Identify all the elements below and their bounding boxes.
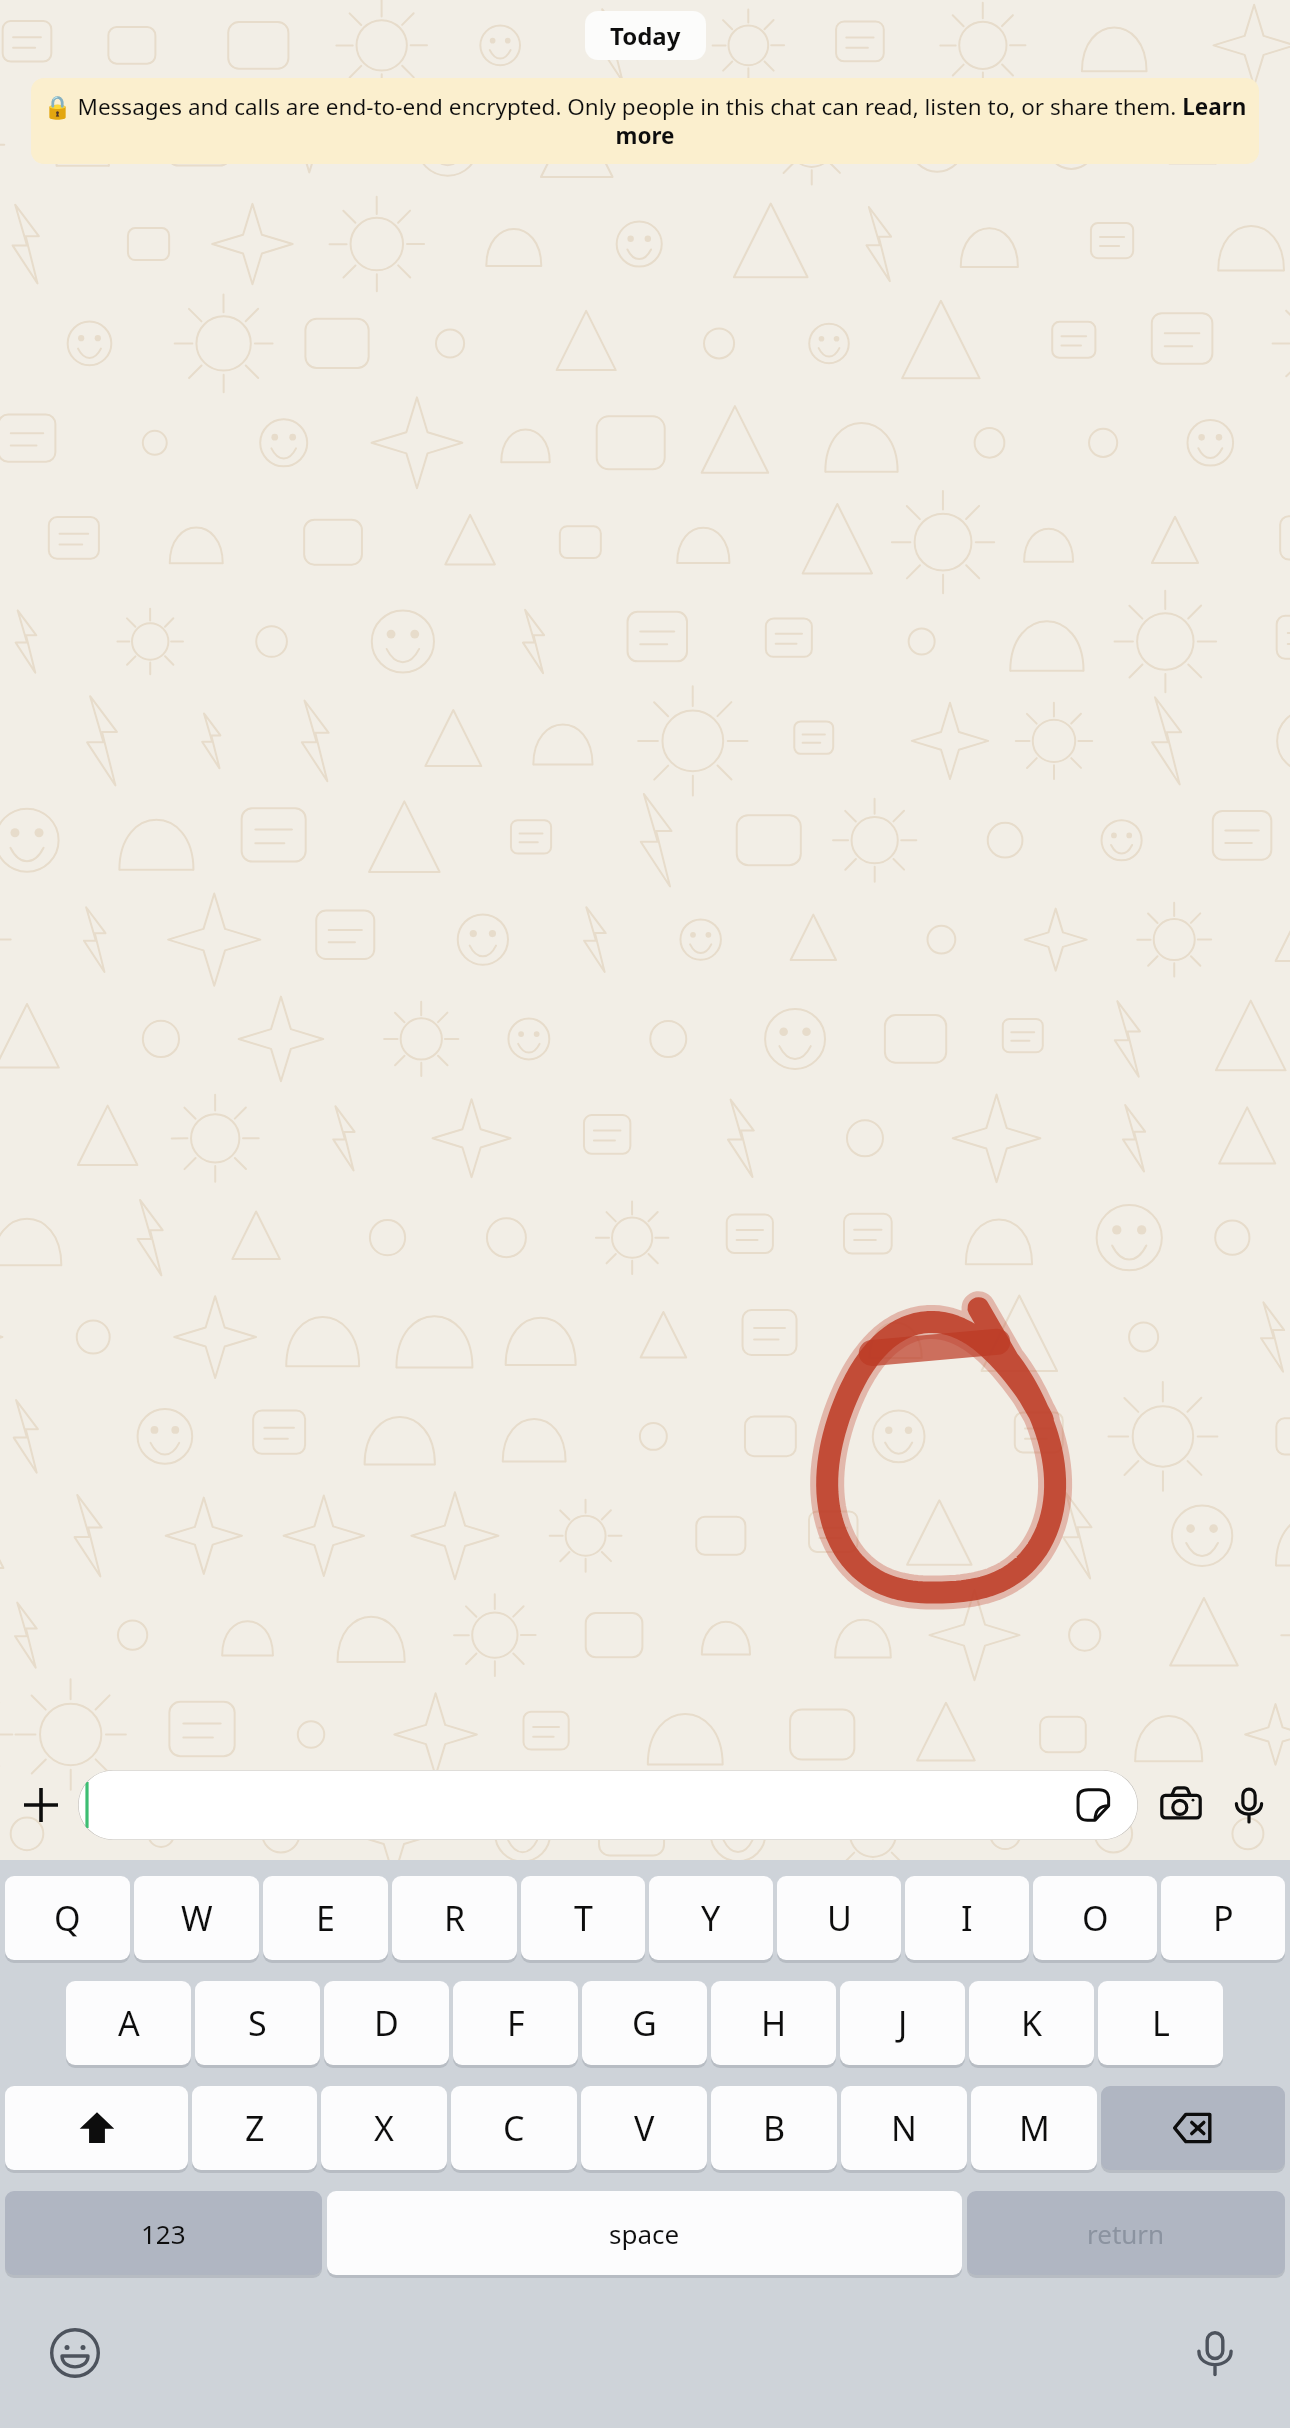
button[interactable]: Y: [649, 1876, 773, 1960]
button[interactable]: O: [1033, 1876, 1157, 1960]
button[interactable]: U: [777, 1876, 901, 1960]
button[interactable]: Stickers: [78, 1770, 1138, 1840]
staticText: F: [507, 2000, 525, 2046]
button[interactable]: S: [195, 1981, 320, 2065]
button[interactable]: X: [321, 2086, 447, 2170]
staticText: W: [181, 1895, 213, 1941]
staticText: M: [1019, 2105, 1050, 2151]
button[interactable]: Voice message: [1218, 1774, 1280, 1836]
button[interactable]: Z: [192, 2086, 317, 2170]
button[interactable]: Emoji: [40, 2318, 110, 2388]
staticText: G: [632, 2000, 657, 2046]
other: Backspace: [1101, 2086, 1285, 2173]
button[interactable]: I: [905, 1876, 1029, 1960]
staticText: Y: [701, 1895, 721, 1941]
button[interactable]: B: [711, 2086, 837, 2170]
button[interactable]: 123: [5, 2191, 322, 2275]
staticText: T: [574, 1895, 593, 1941]
staticText: U: [827, 1895, 852, 1941]
button[interactable]: Attach: [10, 1774, 72, 1836]
staticText: space: [609, 2216, 680, 2251]
staticText: return: [1087, 2216, 1165, 2251]
staticText: P: [1213, 1895, 1234, 1941]
staticText: X: [374, 2105, 394, 2151]
button[interactable]: 🔒 Messages and calls are end-to-end encr…: [31, 78, 1259, 164]
button[interactable]: D: [324, 1981, 449, 2065]
button[interactable]: W: [134, 1876, 259, 1960]
button[interactable]: space: [327, 2191, 962, 2275]
button[interactable]: M: [971, 2086, 1097, 2170]
button[interactable]: K: [969, 1981, 1094, 2065]
button[interactable]: J: [840, 1981, 965, 2065]
button[interactable]: return: [967, 2191, 1285, 2275]
staticText: D: [374, 2000, 399, 2046]
staticText: O: [1082, 1895, 1109, 1941]
staticText: B: [763, 2105, 786, 2151]
button[interactable]: Camera: [1150, 1774, 1212, 1836]
staticText: Z: [245, 2105, 265, 2151]
staticText: A: [118, 2000, 140, 2046]
staticText: S: [248, 2000, 267, 2046]
staticText: V: [634, 2105, 655, 2151]
button[interactable]: Stickers: [1066, 1778, 1120, 1832]
button[interactable]: [5, 2086, 188, 2170]
staticText: Q: [54, 1895, 81, 1941]
button[interactable]: V: [581, 2086, 707, 2170]
button[interactable]: A: [66, 1981, 191, 2065]
staticText: R: [444, 1895, 466, 1941]
button[interactable]: E: [263, 1876, 388, 1960]
staticText: I: [961, 1895, 973, 1941]
button[interactable]: C: [451, 2086, 577, 2170]
staticText: C: [503, 2105, 525, 2151]
staticText: E: [316, 1895, 335, 1941]
staticText: K: [1021, 2000, 1043, 2046]
button[interactable]: T: [521, 1876, 645, 1960]
button[interactable]: Dictation: [1180, 2318, 1250, 2388]
staticText: N: [891, 2105, 917, 2151]
button[interactable]: N: [841, 2086, 967, 2170]
button[interactable]: G: [582, 1981, 707, 2065]
button[interactable]: F: [453, 1981, 578, 2065]
button[interactable]: Today: [585, 11, 706, 60]
staticText: H: [761, 2000, 787, 2046]
staticText: J: [898, 2000, 908, 2046]
staticText: 123: [141, 2216, 186, 2251]
button[interactable]: L: [1098, 1981, 1223, 2065]
button[interactable]: H: [711, 1981, 836, 2065]
button[interactable]: Q: [5, 1876, 130, 1960]
staticText: L: [1152, 2000, 1170, 2046]
button[interactable]: P: [1161, 1876, 1285, 1960]
staticText: Today: [610, 19, 681, 52]
button[interactable]: R: [392, 1876, 517, 1960]
staticText: 🔒 Messages and calls are end-to-end encr…: [41, 91, 1249, 151]
button[interactable]: [1101, 2086, 1285, 2170]
other: Shift: [5, 2086, 188, 2173]
